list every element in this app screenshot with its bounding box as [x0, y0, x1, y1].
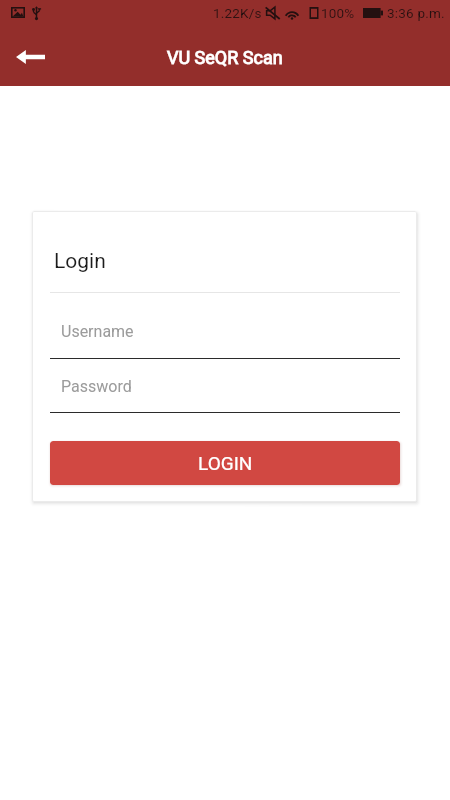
staticText: 1.22K/s — [213, 5, 262, 21]
button[interactable]: Username — [50, 314, 400, 359]
staticText: Username — [61, 322, 134, 341]
staticText: LOGIN — [198, 452, 253, 474]
staticText: 3:36 p.m. — [387, 5, 445, 21]
button[interactable]: Back — [8, 34, 53, 79]
button[interactable]: LOGIN — [50, 441, 400, 485]
staticText: VU SeQR Scan — [167, 47, 283, 68]
button[interactable]: Password — [50, 369, 400, 413]
staticText: Login — [54, 249, 106, 274]
staticText: Password — [61, 377, 132, 396]
staticText: 100% — [321, 5, 355, 21]
